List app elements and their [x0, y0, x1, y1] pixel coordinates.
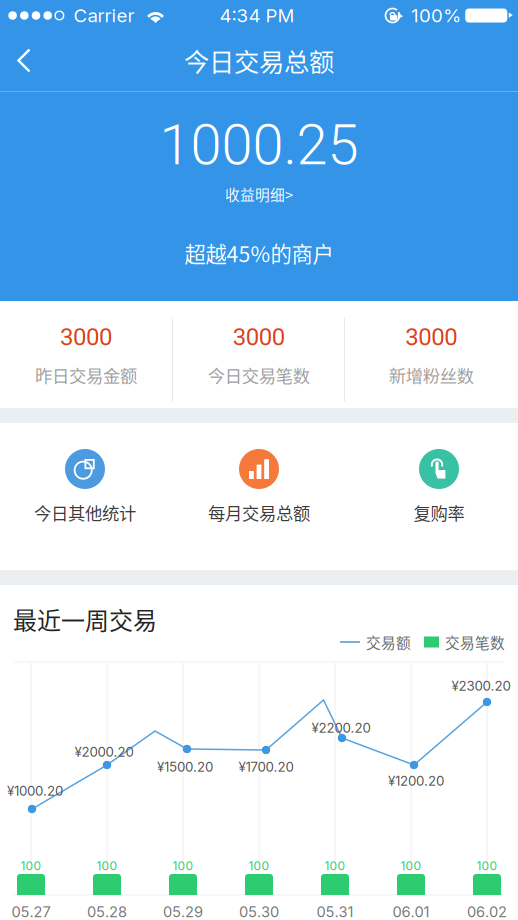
- staticText: 3000: [405, 323, 457, 351]
- staticText: 最近一周交易: [13, 602, 157, 636]
- staticText: ¥1000.20: [7, 783, 63, 799]
- staticText: 4:34 PM: [219, 4, 294, 27]
- button[interactable]: 复购率: [353, 423, 518, 570]
- staticText: 05.27: [11, 903, 50, 920]
- staticText: 06.02: [467, 903, 507, 920]
- staticText: 100: [20, 859, 41, 873]
- button[interactable]: 3000: [345, 301, 518, 408]
- staticText: 100: [248, 859, 269, 873]
- staticText: 05.28: [87, 903, 127, 920]
- staticText: 05.30: [239, 903, 279, 920]
- staticText: 昨日交易金额: [35, 362, 137, 388]
- staticText: 超越45%的商户: [184, 238, 333, 268]
- staticText: ¥1200.20: [388, 773, 444, 789]
- staticText: 1000.25: [159, 112, 358, 178]
- button[interactable]: Back: [0, 31, 52, 89]
- button[interactable]: 3000: [173, 301, 345, 408]
- staticText: 今日交易总额: [184, 42, 334, 79]
- staticText: 100: [476, 859, 497, 873]
- staticText: 05.29: [163, 903, 203, 920]
- staticText: 交易额: [366, 631, 411, 653]
- staticText: Carrier: [73, 4, 134, 27]
- staticText: 05.31: [316, 903, 353, 920]
- staticText: ¥1500.20: [157, 759, 213, 775]
- staticText: 每月交易总额: [208, 500, 310, 525]
- staticText: 06.01: [392, 903, 429, 920]
- staticText: ¥2000.20: [74, 744, 133, 760]
- button[interactable]: 今日其他统计: [0, 423, 171, 570]
- staticText: 收益明细>: [225, 183, 293, 205]
- staticText: ¥2300.20: [451, 678, 510, 694]
- staticText: 100: [324, 859, 345, 873]
- staticText: 复购率: [413, 500, 464, 525]
- staticText: 100: [172, 859, 193, 873]
- staticText: ¥2200.20: [311, 720, 370, 736]
- staticText: ¥1700.20: [238, 759, 293, 775]
- button[interactable]: 每月交易总额: [173, 423, 345, 570]
- staticText: 新增粉丝数: [389, 362, 474, 388]
- staticText: 今日交易笔数: [208, 362, 310, 388]
- staticText: 100: [400, 859, 421, 873]
- staticText: 今日其他统计: [34, 500, 136, 525]
- button[interactable]: 收益明细>: [207, 175, 311, 213]
- button[interactable]: 3000: [0, 301, 173, 408]
- staticText: 交易笔数: [445, 631, 505, 653]
- staticText: 3000: [233, 323, 285, 351]
- staticText: 100: [96, 859, 117, 873]
- staticText: 100%: [411, 4, 461, 27]
- staticText: 3000: [60, 323, 112, 351]
